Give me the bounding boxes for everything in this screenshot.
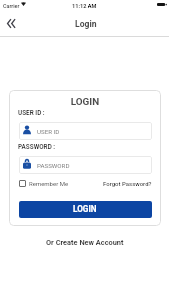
staticText: Remember Me <box>29 180 69 187</box>
button[interactable]: Remember Me <box>19 178 69 189</box>
staticText: LOGIN <box>9 96 161 108</box>
button[interactable]: Forgot Password? <box>103 178 152 189</box>
staticText: USER ID : <box>18 109 45 116</box>
button[interactable]: USER ID <box>19 122 152 140</box>
staticText: USER ID <box>37 128 60 135</box>
button[interactable]: Back <box>1 13 21 33</box>
staticText: Carrier <box>3 3 20 9</box>
button[interactable]: PASSWORD <box>19 156 152 174</box>
staticText: Login <box>75 19 97 29</box>
staticText: Or Create New Account <box>46 238 124 247</box>
button[interactable]: Or Create New Account <box>42 235 128 250</box>
staticText: Forgot Password? <box>103 180 152 187</box>
staticText: PASSWORD : <box>18 143 56 150</box>
staticText: LOGIN <box>73 204 97 214</box>
staticText: PASSWORD <box>37 162 70 169</box>
button[interactable]: LOGIN <box>19 201 152 218</box>
staticText: 11:12 AM <box>72 3 97 10</box>
